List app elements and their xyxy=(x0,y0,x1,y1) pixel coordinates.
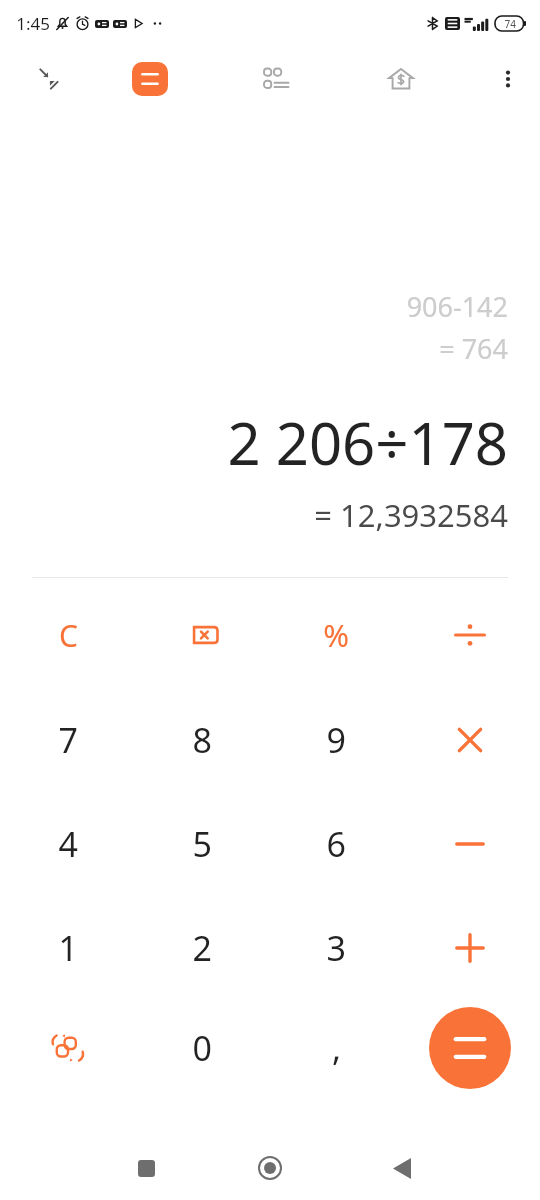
staticText: 1 xyxy=(58,925,78,971)
staticText: = 764 xyxy=(439,330,508,367)
button[interactable]: C xyxy=(8,589,128,681)
button[interactable]: Percent xyxy=(276,589,396,681)
button[interactable]: Divide xyxy=(410,589,530,681)
staticText: 2 xyxy=(192,925,212,971)
button[interactable]: 5 xyxy=(142,798,262,890)
button[interactable]: 7 xyxy=(8,694,128,786)
staticText: C xyxy=(59,615,78,656)
button[interactable]: Back xyxy=(374,1140,430,1196)
button[interactable]: Plus xyxy=(410,902,530,994)
button[interactable]: Loan xyxy=(375,53,427,105)
staticText: 5 xyxy=(192,821,212,867)
button[interactable]: 0 xyxy=(142,1002,262,1094)
button[interactable]: Calculator mode xyxy=(125,54,175,104)
button[interactable]: Backspace xyxy=(142,589,262,681)
staticText: 74 xyxy=(504,17,516,31)
staticText: 1:45 xyxy=(16,12,50,35)
button[interactable]: Collapse xyxy=(22,53,74,105)
button[interactable]: 9 xyxy=(276,694,396,786)
staticText: 7 xyxy=(58,717,78,763)
staticText: 2 206÷178 xyxy=(227,403,508,482)
staticText: 0 xyxy=(192,1025,212,1071)
staticText: % xyxy=(323,614,349,656)
button[interactable]: More options xyxy=(484,55,532,103)
button[interactable]: Minus xyxy=(410,798,530,890)
button[interactable]: Multiply xyxy=(410,694,530,786)
button[interactable]: Convert xyxy=(8,1002,128,1094)
staticText: 4 xyxy=(58,821,78,867)
button[interactable]: Recents xyxy=(118,1140,174,1196)
staticText: 9 xyxy=(326,717,346,763)
button[interactable]: Decimal comma xyxy=(276,1002,396,1094)
button[interactable]: 6 xyxy=(276,798,396,890)
button[interactable]: Home xyxy=(242,1140,298,1196)
button[interactable]: 1 xyxy=(8,902,128,994)
button[interactable]: 2 xyxy=(142,902,262,994)
button[interactable]: 8 xyxy=(142,694,262,786)
button[interactable]: Equals xyxy=(429,1007,511,1089)
staticText: 906-142 xyxy=(406,288,508,325)
button[interactable]: Tools xyxy=(250,53,302,105)
button[interactable]: 3 xyxy=(276,902,396,994)
button[interactable]: 4 xyxy=(8,798,128,890)
staticText: , xyxy=(331,1025,341,1071)
staticText: 6 xyxy=(326,821,346,867)
staticText: 3 xyxy=(326,925,346,971)
staticText: 8 xyxy=(192,717,212,763)
staticText: = 12,3932584 xyxy=(314,494,508,536)
